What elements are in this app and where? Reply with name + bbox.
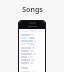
- button[interactable]: [21, 43, 43, 45]
- button[interactable]: [21, 62, 43, 64]
- button[interactable]: [21, 40, 43, 42]
- button[interactable]: [21, 56, 43, 58]
- button[interactable]: [21, 47, 43, 49]
- button[interactable]: [21, 53, 43, 55]
- staticText: Songs: [22, 5, 43, 15]
- button[interactable]: Search: [21, 30, 43, 32]
- button[interactable]: [21, 59, 43, 61]
- button[interactable]: [21, 71, 43, 72]
- button[interactable]: [21, 37, 43, 39]
- button[interactable]: Search: [18, 20, 46, 72]
- button[interactable]: [21, 50, 43, 52]
- button[interactable]: [21, 34, 43, 36]
